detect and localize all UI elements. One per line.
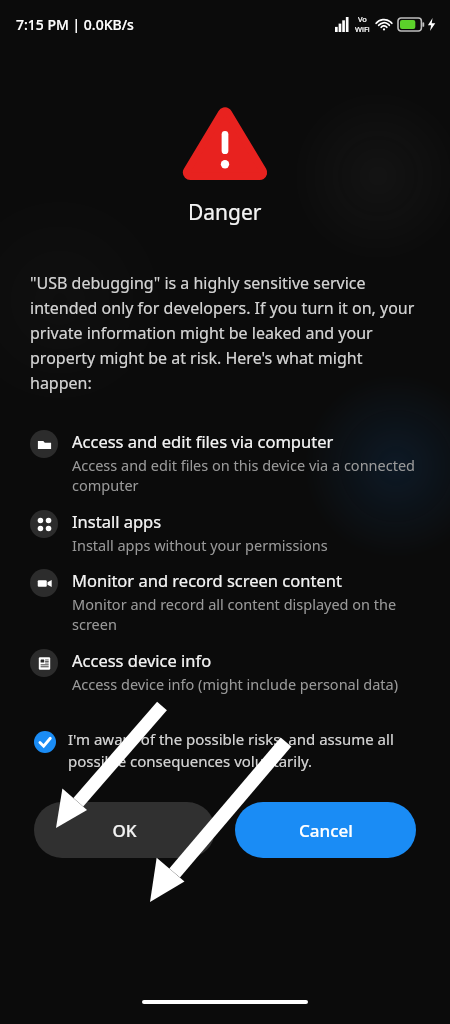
button[interactable]: I'm aware of the possible risks, and ass…: [0, 725, 450, 776]
staticText: WiFi: [355, 24, 370, 34]
button[interactable]: Access device info: [0, 642, 450, 701]
staticText: Access device info: [72, 649, 212, 671]
staticText: Access device info (might include person…: [72, 674, 399, 694]
button[interactable]: Access and edit files via computer: [0, 423, 450, 503]
button[interactable]: OK: [34, 802, 215, 858]
staticText: Danger: [188, 198, 262, 227]
button[interactable]: Monitor and record screen content: [0, 562, 450, 642]
staticText: Access and edit files via computer: [72, 430, 334, 452]
staticText: Vo: [358, 14, 367, 24]
staticText: I'm aware of the possible risks, and ass…: [68, 729, 420, 772]
staticText: Install apps without your permissions: [72, 535, 328, 555]
button[interactable]: Cancel: [235, 802, 416, 858]
button[interactable]: Install apps: [0, 503, 450, 562]
staticText: "USB debugging" is a highly sensitive se…: [30, 272, 420, 393]
staticText: Install apps: [72, 510, 162, 532]
staticText: Access and edit files on this device via…: [72, 455, 420, 496]
staticText: Cancel: [299, 819, 353, 842]
staticText: Monitor and record all content displayed…: [72, 594, 420, 635]
staticText: OK: [112, 819, 137, 842]
staticText: Monitor and record screen content: [72, 569, 342, 591]
staticText: 7:15 PM | 0.0KB/s: [16, 15, 134, 34]
